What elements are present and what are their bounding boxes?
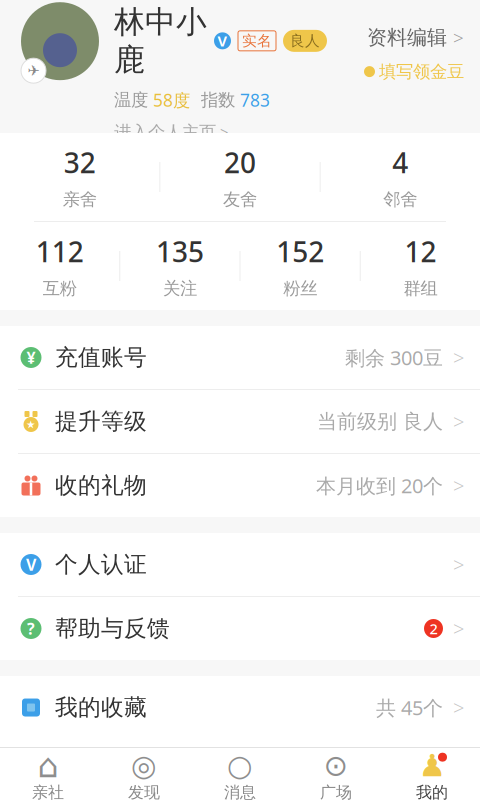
staticText: 互粉	[43, 278, 77, 299]
staticText: 20	[224, 144, 256, 181]
button[interactable]: V	[0, 533, 480, 596]
button[interactable]: 资料编辑	[367, 21, 464, 54]
staticText: 广场	[320, 783, 352, 800]
button[interactable]: 12	[361, 219, 480, 313]
staticText: >	[453, 472, 464, 499]
staticText: >	[220, 122, 228, 142]
staticText: 充值账号	[55, 344, 147, 371]
button[interactable]: 收的礼物	[0, 454, 480, 517]
button[interactable]: 135	[120, 219, 239, 313]
staticText: >	[453, 551, 464, 578]
staticText: ★	[26, 418, 36, 430]
staticText: ⊙	[323, 749, 348, 782]
staticText: 112	[36, 233, 84, 270]
staticText: 本月收到 20个	[316, 472, 443, 499]
staticText: >	[453, 615, 464, 642]
staticText: 共 45个	[376, 694, 443, 721]
staticText: ♟	[418, 748, 445, 783]
staticText: 提升等级	[55, 408, 147, 435]
button[interactable]: 4	[321, 130, 480, 224]
staticText: 亲舍	[63, 189, 97, 210]
staticText: 152	[276, 233, 324, 270]
staticText: ○	[227, 749, 253, 782]
button[interactable]: ♟	[384, 747, 480, 800]
button[interactable]: 152	[240, 219, 360, 313]
button[interactable]: ★	[0, 390, 480, 453]
staticText: >	[453, 25, 464, 50]
staticText: 帮助与反馈	[55, 615, 170, 642]
staticText: 消息	[224, 783, 256, 800]
staticText: 个人认证	[55, 551, 147, 578]
staticText: >	[453, 694, 464, 721]
staticText: 58度	[153, 88, 190, 111]
staticText: V	[26, 554, 36, 575]
staticText: 135	[156, 233, 204, 270]
button[interactable]: ◎	[96, 747, 192, 800]
staticText: ⌂	[37, 747, 58, 785]
button[interactable]: 填写领金豆	[364, 58, 464, 85]
button[interactable]: 我的收藏	[0, 676, 480, 739]
staticText: 粉丝	[283, 278, 317, 299]
button[interactable]: ¥	[0, 326, 480, 389]
staticText: 收的礼物	[55, 472, 147, 499]
staticText: >	[453, 408, 464, 435]
staticText: 良人	[290, 32, 320, 50]
staticText: 32	[64, 144, 96, 181]
button[interactable]: 进入个人主页	[114, 117, 228, 147]
staticText: 填写领金豆	[379, 61, 464, 82]
staticText: 我的收藏	[55, 694, 147, 721]
button[interactable]: 112	[0, 219, 119, 313]
staticText: 当前级别 良人	[317, 409, 443, 434]
staticText: ¥	[26, 347, 35, 368]
staticText: 我的	[416, 783, 448, 800]
button[interactable]: Avatar	[20, 0, 100, 83]
staticText: 友舍	[223, 189, 257, 210]
staticText: 783	[240, 88, 270, 111]
staticText: 2	[429, 619, 437, 638]
staticText: 群组	[403, 278, 437, 299]
staticText: >	[453, 344, 464, 371]
staticText: 剩余 300豆	[345, 344, 443, 371]
button[interactable]: ⊙	[288, 747, 384, 800]
staticText: 实名	[242, 32, 272, 50]
staticText: 邻舍	[383, 189, 417, 210]
staticText: 进入个人主页	[114, 121, 216, 143]
button[interactable]: ○	[192, 747, 288, 800]
button[interactable]: 32	[0, 130, 159, 224]
staticText: ◎	[131, 749, 157, 782]
staticText: 4	[392, 144, 408, 181]
button[interactable]: ⌂	[0, 747, 96, 800]
staticText: 林中小鹿	[114, 3, 207, 78]
staticText: 指数	[201, 89, 235, 111]
button[interactable]: 20	[160, 130, 320, 224]
staticText: 资料编辑	[367, 25, 447, 50]
staticText: 温度	[114, 89, 148, 111]
button[interactable]: ?	[0, 597, 480, 660]
staticText: 发现	[128, 783, 160, 800]
staticText: V	[217, 31, 227, 51]
staticText: ✈	[27, 62, 39, 79]
staticText: 关注	[163, 278, 197, 299]
staticText: ?	[27, 618, 35, 639]
staticText: 12	[404, 233, 436, 270]
staticText: 亲社	[32, 783, 64, 800]
